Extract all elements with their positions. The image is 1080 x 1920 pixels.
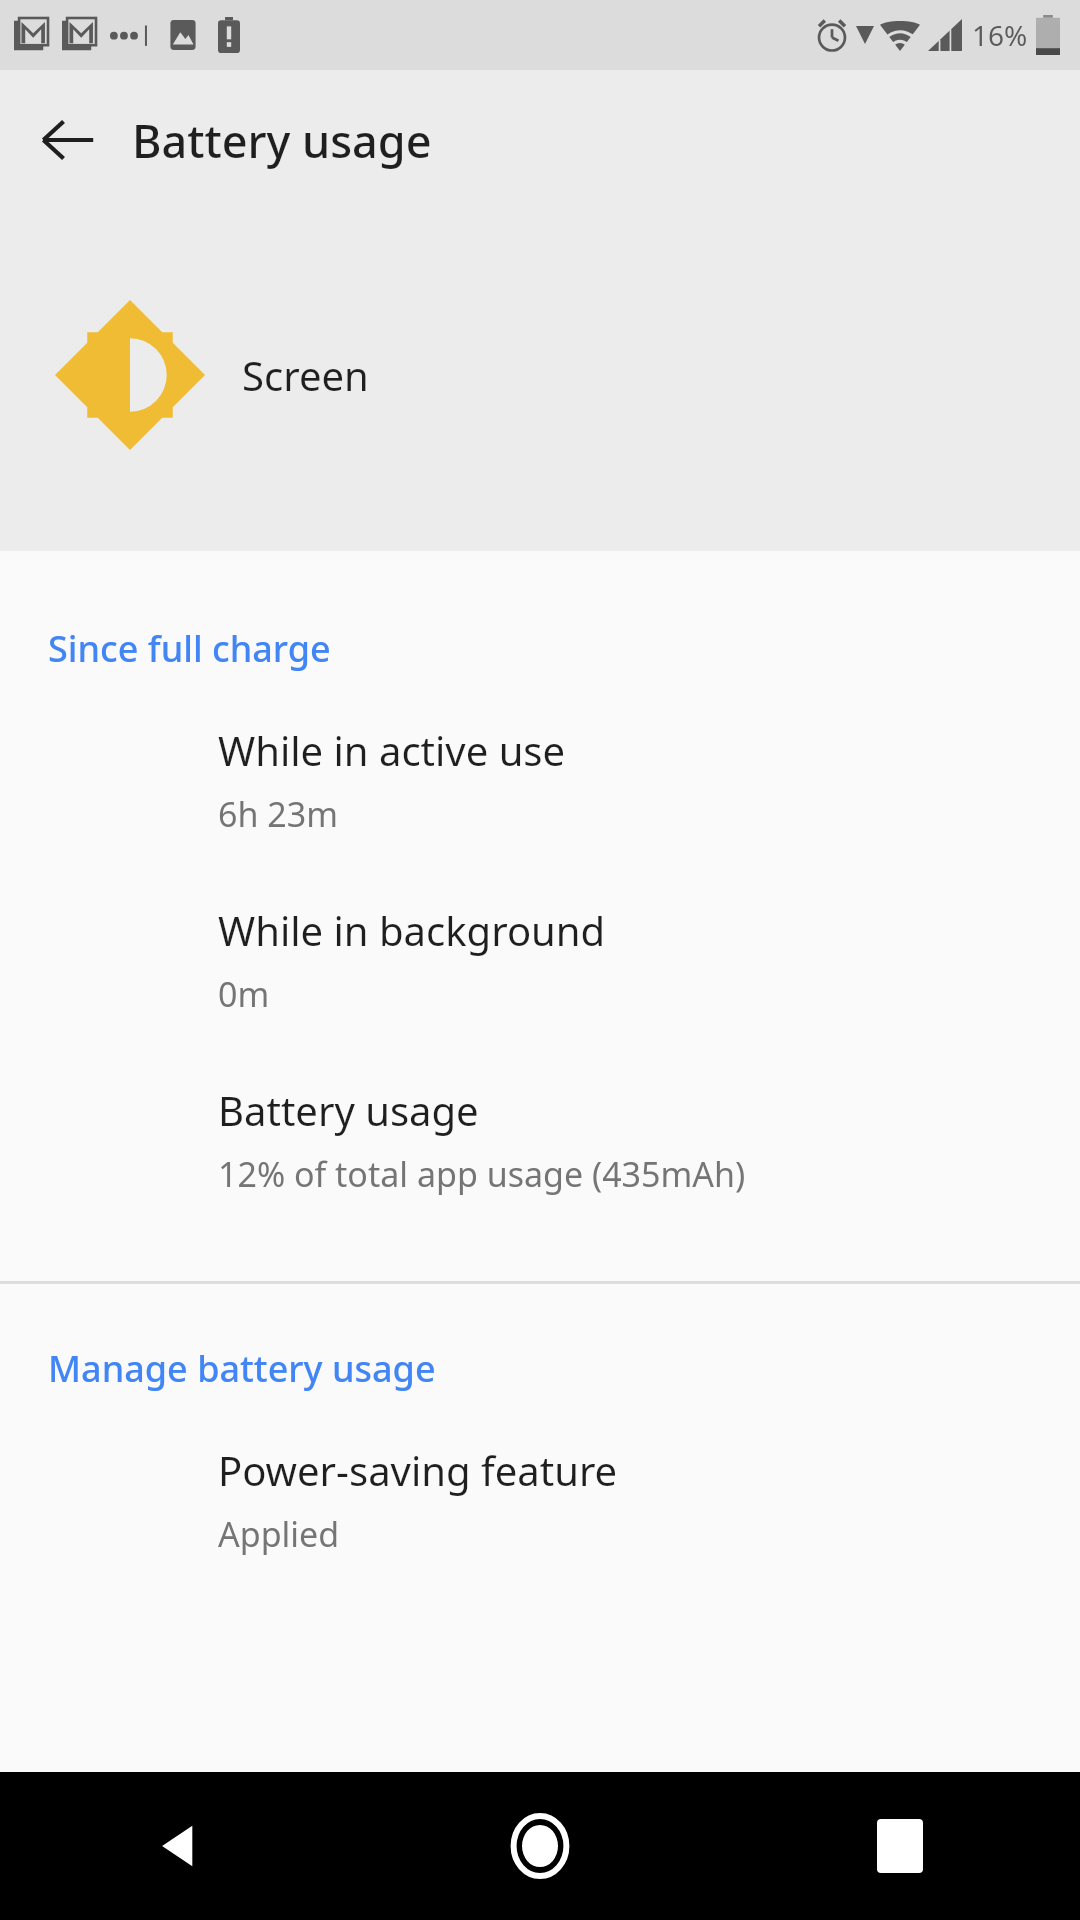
staticText: 12% of total app usage (435mAh) [218, 1151, 746, 1197]
button[interactable]: Back [0, 1772, 360, 1920]
staticText: Since full charge [48, 624, 331, 673]
button[interactable]: Recent apps [720, 1772, 1080, 1920]
staticText: Battery usage [132, 110, 432, 171]
button[interactable]: Battery usage [0, 1083, 1080, 1197]
button[interactable]: Screen [0, 300, 1080, 450]
staticText: Manage battery usage [48, 1344, 436, 1393]
button[interactable]: Back [28, 100, 108, 180]
staticText: 6h 23m [218, 791, 338, 837]
staticText: While in background [218, 903, 606, 957]
staticText: 0m [218, 971, 270, 1017]
staticText: Applied [218, 1511, 340, 1557]
button[interactable]: Power-saving feature [0, 1443, 1080, 1557]
staticText: Screen [242, 348, 369, 402]
staticText: Power-saving feature [218, 1443, 618, 1497]
staticText: 16% [972, 16, 1028, 54]
staticText: While in active use [218, 723, 566, 777]
button[interactable]: While in active use [0, 723, 1080, 837]
staticText: Battery usage [218, 1083, 479, 1137]
button[interactable]: Home [360, 1772, 720, 1920]
button[interactable]: While in background [0, 903, 1080, 1017]
